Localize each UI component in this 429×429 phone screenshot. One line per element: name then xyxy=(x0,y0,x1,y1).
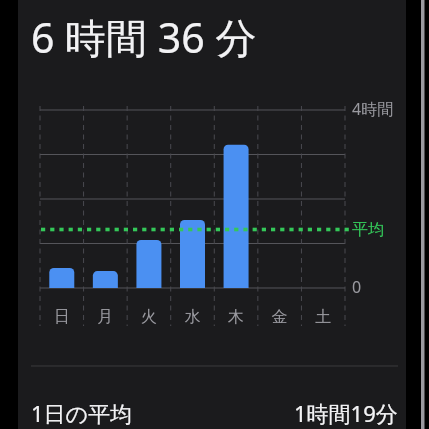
button[interactable]: Screen time weekly chart xyxy=(0,0,429,429)
